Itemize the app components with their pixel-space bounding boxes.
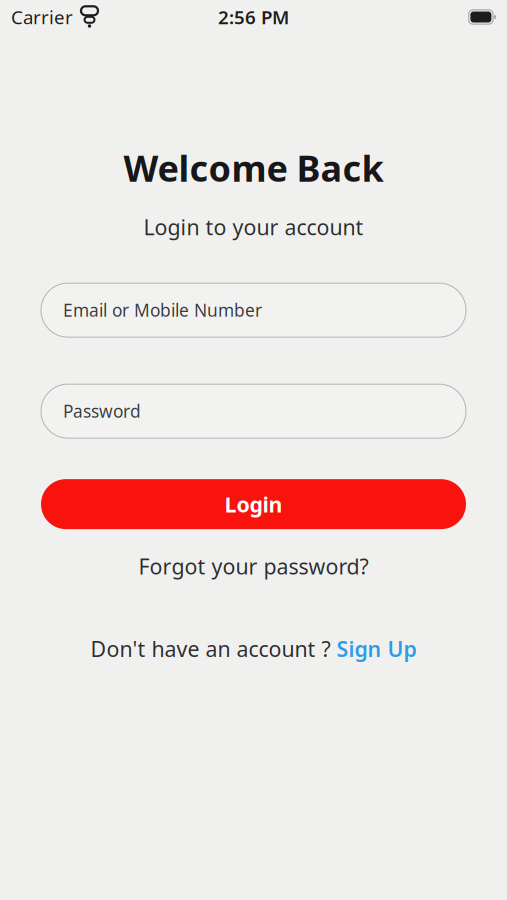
staticText: 2:56 PM <box>218 5 289 29</box>
staticText: Email or Mobile Number <box>63 299 262 322</box>
staticText: Forgot your password? <box>138 552 368 580</box>
staticText: Login <box>224 490 282 518</box>
button[interactable]: Forgot your password? <box>128 546 378 586</box>
button[interactable]: Login <box>41 479 466 529</box>
staticText: Password <box>63 400 141 423</box>
staticText: Login to your account <box>143 213 363 241</box>
button[interactable]: Email or Mobile Number <box>41 283 466 337</box>
staticText: Don't have an account ? <box>90 634 330 663</box>
staticText: Welcome Back <box>123 144 383 192</box>
button[interactable]: Sign Up <box>336 634 416 663</box>
button[interactable]: Password <box>41 384 466 438</box>
staticText: Sign Up <box>336 634 416 663</box>
staticText: Carrier <box>11 5 73 29</box>
